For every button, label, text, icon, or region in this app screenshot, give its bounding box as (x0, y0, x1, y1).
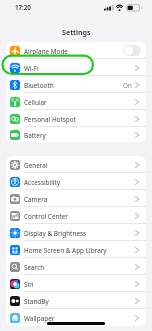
staticText: Accessibility (24, 178, 61, 187)
staticText: Bluetooth (24, 81, 54, 90)
button[interactable]: Personal Hotspot (6, 110, 146, 127)
button[interactable]: StandBy (6, 292, 146, 309)
button[interactable]: Display & Brightness (6, 224, 146, 241)
staticText: Cellular (24, 98, 47, 107)
staticText: On (123, 81, 132, 90)
button[interactable] (123, 45, 141, 56)
staticText: Camera (24, 195, 48, 204)
button[interactable]: Cellular (6, 93, 146, 110)
staticText: Settings (62, 27, 91, 37)
button[interactable]: Siri (6, 275, 146, 292)
button[interactable]: Search (6, 258, 146, 275)
staticText: Control Center (24, 212, 68, 221)
staticText: General (24, 161, 48, 170)
button[interactable]: Wallpaper (6, 309, 146, 326)
button[interactable]: Control Center (6, 207, 146, 224)
button[interactable]: Bluetooth (6, 76, 146, 93)
staticText: Personal Hotspot (24, 115, 76, 124)
staticText: Search (24, 263, 45, 272)
button[interactable]: Camera (6, 190, 146, 207)
button[interactable]: Wi-Fi (6, 59, 146, 76)
staticText: Siri (24, 280, 34, 289)
button[interactable]: Accessibility (6, 173, 146, 190)
staticText: Home Screen & App Library (24, 246, 107, 255)
staticText: StandBy (24, 297, 49, 306)
button[interactable]: Airplane Mode (6, 42, 146, 59)
staticText: Wallpaper (24, 314, 55, 323)
button[interactable]: General (6, 156, 146, 173)
staticText: Display & Brightness (24, 229, 87, 238)
staticText: 17:20 (15, 3, 31, 11)
staticText: Battery (24, 131, 46, 140)
button[interactable]: Battery (6, 127, 146, 142)
staticText: Airplane Mode (24, 47, 68, 56)
button[interactable]: Home Screen & App Library (6, 241, 146, 258)
staticText: Wi-Fi (24, 64, 39, 73)
